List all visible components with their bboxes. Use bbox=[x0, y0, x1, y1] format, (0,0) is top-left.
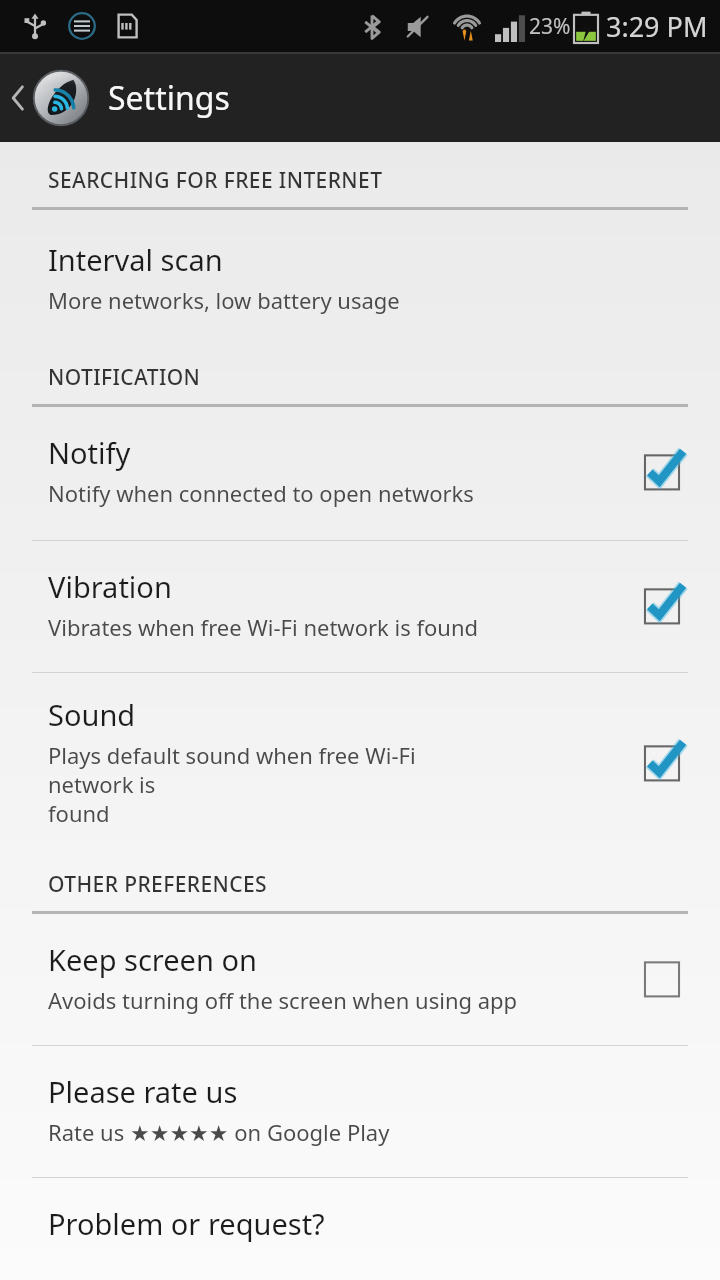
staticText: 3:29 PM bbox=[606, 8, 708, 45]
button[interactable]: Navigate up bbox=[0, 54, 720, 142]
staticText: Notify when connected to open networks bbox=[48, 478, 474, 508]
staticText: Vibration bbox=[48, 567, 172, 606]
button[interactable]: Problem or request? bbox=[0, 1178, 720, 1280]
staticText: Notify bbox=[48, 433, 131, 472]
staticText: Keep screen on bbox=[48, 940, 257, 979]
staticText: Rate us ★★★★★ on Google Play bbox=[48, 1117, 390, 1147]
staticText: Problem or request? bbox=[48, 1204, 325, 1243]
button[interactable]: Keep screen on, off bbox=[636, 952, 688, 1004]
button[interactable]: Please rate us bbox=[0, 1046, 720, 1177]
button[interactable]: Keep screen on bbox=[0, 914, 720, 1045]
staticText: NOTIFICATION bbox=[48, 363, 201, 392]
staticText: Vibrates when free Wi-Fi network is foun… bbox=[48, 612, 479, 642]
button[interactable]: Vibration, on bbox=[636, 579, 688, 631]
staticText: Sound bbox=[48, 695, 136, 734]
button[interactable]: Notify bbox=[0, 407, 720, 540]
button[interactable]: Notify, on bbox=[636, 445, 688, 497]
button[interactable]: Sound, on bbox=[636, 736, 688, 788]
staticText: SEARCHING FOR FREE INTERNET bbox=[48, 166, 383, 195]
other: Navigate up bbox=[8, 78, 28, 118]
staticText: Plays default sound when free Wi-Fi netw… bbox=[48, 740, 460, 828]
staticText: 23% bbox=[529, 12, 571, 41]
staticText: Settings bbox=[108, 76, 230, 120]
staticText: Interval scan bbox=[48, 240, 223, 279]
button[interactable]: Vibration bbox=[0, 541, 720, 672]
staticText: Please rate us bbox=[48, 1072, 238, 1111]
staticText: Avoids turning off the screen when using… bbox=[48, 985, 518, 1015]
button[interactable]: Sound bbox=[0, 673, 720, 850]
staticText: OTHER PREFERENCES bbox=[48, 870, 267, 899]
button[interactable]: Interval scan bbox=[0, 210, 720, 349]
staticText: More networks, low battery usage bbox=[48, 285, 400, 315]
